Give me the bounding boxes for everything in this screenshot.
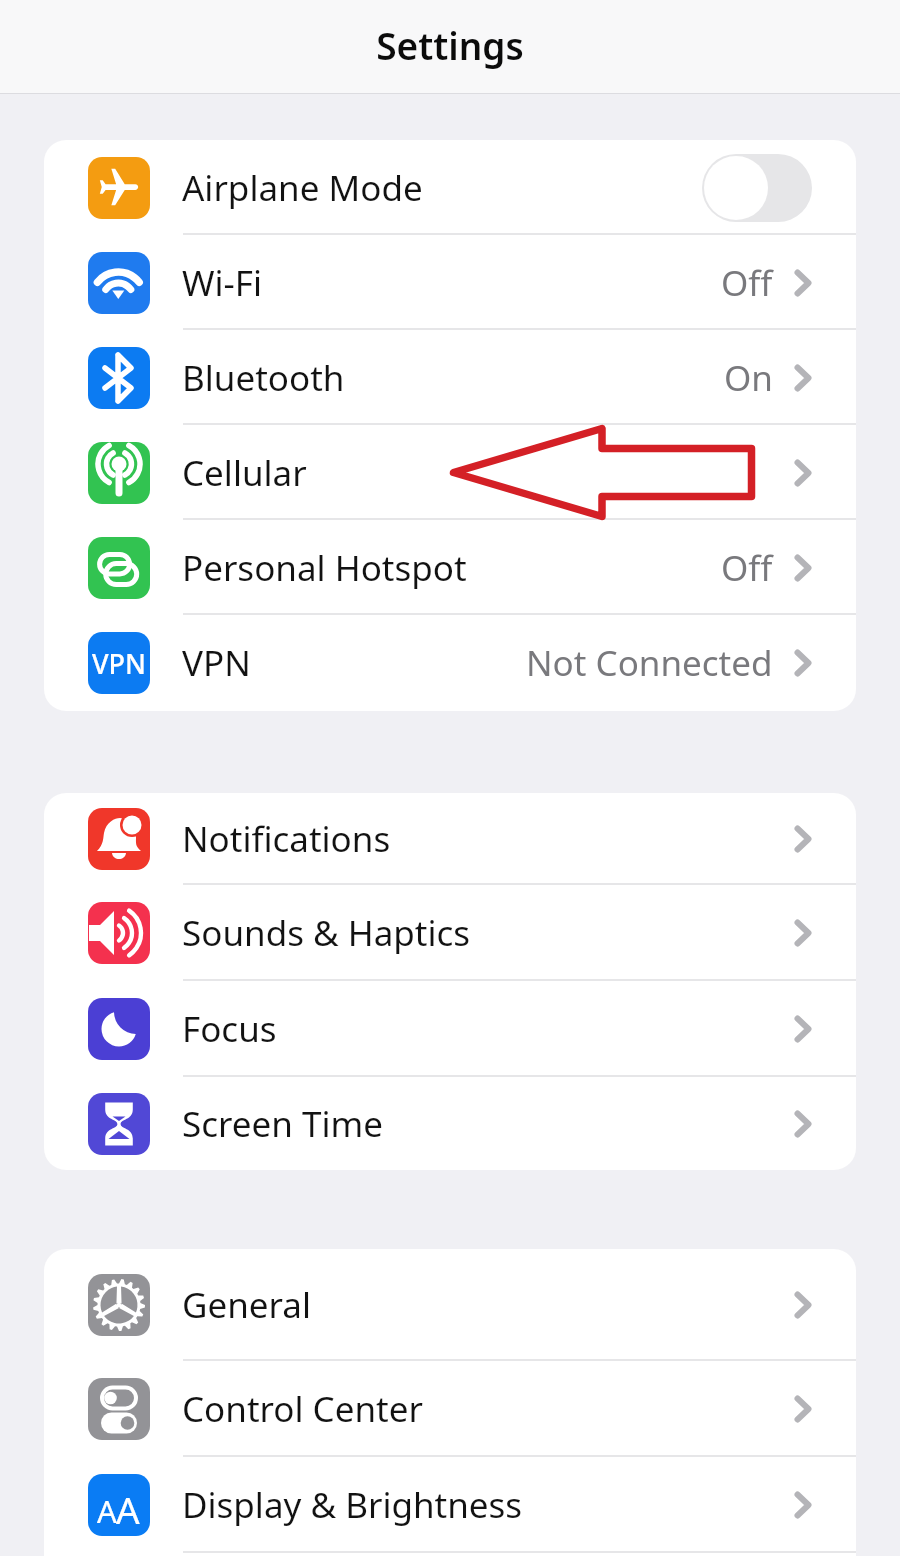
- button[interactable]: VPN: [44, 615, 856, 710]
- staticText: General: [182, 1281, 312, 1329]
- button[interactable]: A: [44, 1457, 856, 1553]
- button[interactable]: Notifications: [44, 793, 856, 885]
- button[interactable]: Bluetooth: [44, 330, 856, 425]
- staticText: Settings: [376, 20, 524, 70]
- button[interactable]: Airplane Mode: [44, 140, 856, 235]
- staticText: On: [724, 354, 773, 402]
- button[interactable]: General: [44, 1249, 856, 1361]
- staticText: Wi-Fi: [182, 259, 263, 307]
- staticText: Bluetooth: [182, 354, 345, 402]
- button[interactable]: Control Center: [44, 1361, 856, 1457]
- staticText: VPN: [182, 639, 251, 687]
- staticText: A: [116, 1484, 140, 1534]
- staticText: Off: [721, 544, 773, 592]
- staticText: VPN: [92, 645, 147, 682]
- staticText: Airplane Mode: [182, 164, 423, 212]
- button[interactable]: Focus: [44, 981, 856, 1077]
- button[interactable]: Sounds & Haptics: [44, 885, 856, 981]
- staticText: Focus: [182, 1005, 277, 1053]
- staticText: Cellular: [182, 449, 307, 497]
- staticText: Off: [721, 259, 773, 307]
- button[interactable]: Personal Hotspot: [44, 520, 856, 615]
- button[interactable]: Wi-Fi: [44, 235, 856, 330]
- staticText: Screen Time: [182, 1100, 383, 1148]
- staticText: Control Center: [182, 1385, 423, 1433]
- staticText: Sounds & Haptics: [182, 909, 471, 957]
- staticText: Notifications: [182, 815, 391, 863]
- staticText: Display & Brightness: [182, 1481, 523, 1529]
- staticText: Personal Hotspot: [182, 544, 467, 592]
- button[interactable]: Airplane Mode toggle, off: [702, 154, 812, 222]
- staticText: Not Connected: [526, 639, 773, 687]
- button[interactable]: Screen Time: [44, 1077, 856, 1170]
- button[interactable]: Cellular: [44, 425, 856, 520]
- staticText: A: [97, 1490, 117, 1532]
